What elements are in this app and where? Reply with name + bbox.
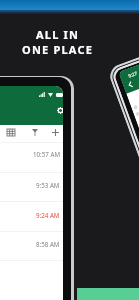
staticText: ONE PLACE — [22, 42, 94, 57]
button[interactable]: 9:24 AM — [0, 204, 63, 234]
staticText: 9:53 AM — [36, 181, 60, 189]
staticText: 10:57 AM — [33, 150, 60, 158]
button[interactable]: Add — [48, 125, 62, 139]
button[interactable]: 8:58 AM — [0, 233, 63, 263]
button[interactable]: Settings — [55, 105, 63, 116]
button[interactable]: 10:57 AM — [0, 143, 63, 173]
staticText: 9:24 AM — [36, 211, 60, 219]
button[interactable]: 9:53 AM — [0, 174, 63, 204]
button[interactable]: Back — [124, 79, 135, 90]
staticText: ALL IN — [36, 27, 80, 42]
staticText: 9:27 — [127, 70, 139, 79]
staticText: 8:58 AM — [36, 240, 60, 248]
button[interactable]: Filter — [28, 125, 42, 139]
button[interactable]: Grid view — [4, 125, 18, 139]
